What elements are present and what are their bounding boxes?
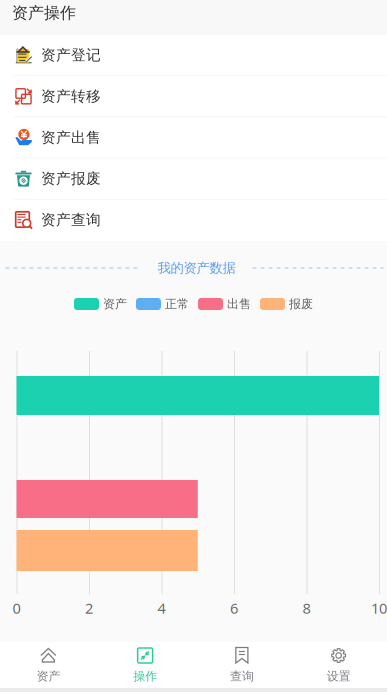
button[interactable]: 资产报废 — [0, 159, 387, 200]
button[interactable]: 设置 — [290, 642, 387, 688]
button[interactable]: 操作 — [97, 642, 194, 688]
staticText: 2 — [85, 598, 93, 618]
staticText: 查询 — [230, 669, 254, 684]
button[interactable]: 查询 — [193, 642, 290, 688]
button[interactable]: 资产登记 — [0, 35, 387, 76]
staticText: 10 — [371, 598, 387, 618]
staticText: 设置 — [327, 669, 351, 684]
staticText: 6 — [230, 598, 238, 618]
staticText: 资产出售 — [41, 128, 101, 146]
button[interactable]: 资产出售 — [0, 117, 387, 159]
staticText: 资产报废 — [41, 170, 101, 188]
button[interactable]: 资产查询 — [0, 200, 387, 241]
staticText: 资产登记 — [41, 46, 101, 64]
staticText: 资产操作 — [12, 3, 76, 23]
staticText: 正常 — [165, 297, 189, 311]
staticText: 我的资产数据 — [157, 260, 235, 276]
staticText: 8 — [302, 598, 310, 618]
staticText: 0 — [12, 598, 20, 618]
button[interactable]: 资产 — [0, 642, 97, 688]
staticText: 出售 — [227, 297, 251, 311]
staticText: 操作 — [133, 669, 157, 684]
staticText: 报废 — [289, 297, 313, 311]
staticText: 4 — [157, 598, 165, 618]
staticText: 资产 — [36, 669, 60, 684]
staticText: 资产转移 — [41, 87, 101, 105]
staticText: 资产 — [103, 297, 127, 311]
button[interactable]: 资产转移 — [0, 76, 387, 117]
staticText: 资产查询 — [41, 211, 101, 229]
